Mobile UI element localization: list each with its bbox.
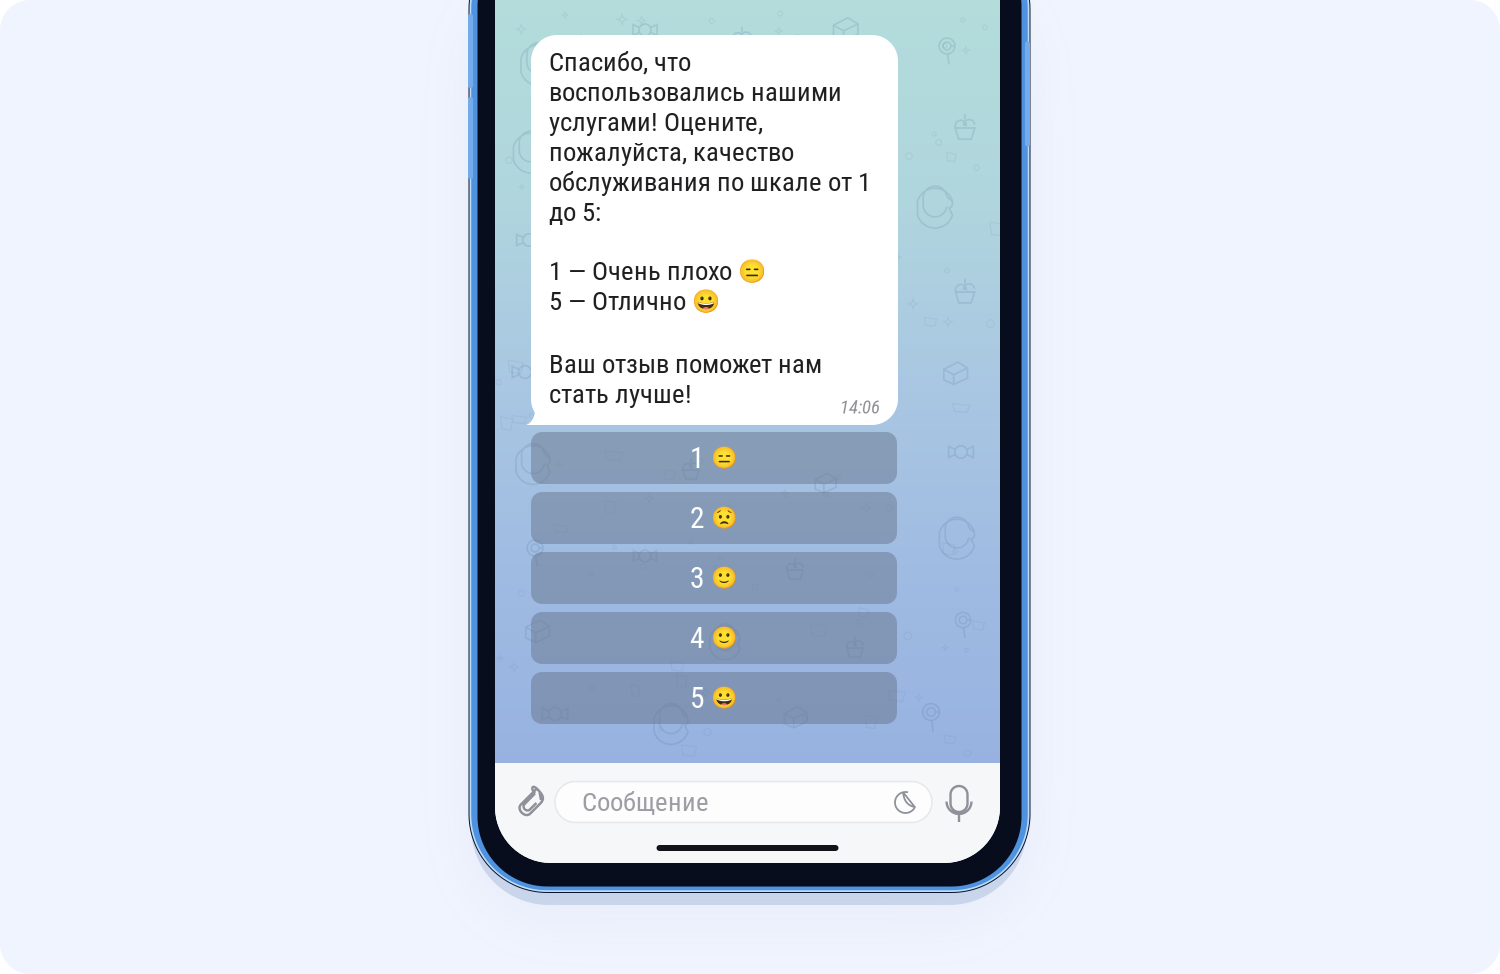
staticText: до 5:: [549, 196, 601, 228]
staticText: 5: [690, 681, 704, 715]
staticText: 🙂: [711, 565, 738, 590]
staticText: 2: [690, 501, 704, 535]
staticText: Спасибо, что: [549, 46, 691, 78]
staticText: 😑: [711, 445, 738, 470]
button[interactable]: Record voice message: [937, 782, 981, 826]
staticText: 😟: [711, 505, 738, 530]
staticText: Ваш отзыв поможет нам: [549, 348, 822, 380]
staticText: 😀: [692, 288, 720, 314]
staticText: услугами! Оцените,: [549, 106, 763, 138]
button[interactable]: 1: [531, 432, 897, 484]
staticText: Сообщение: [582, 786, 709, 818]
button[interactable]: 4: [531, 612, 897, 664]
staticText: 🙂: [711, 625, 738, 650]
button[interactable]: 5: [531, 672, 897, 724]
staticText: 14:06: [840, 396, 880, 418]
staticText: воспользовались нашими: [549, 76, 842, 108]
staticText: 1 — Очень плохо: [549, 255, 732, 287]
staticText: 4: [690, 621, 704, 655]
button[interactable]: Attach file: [507, 779, 551, 825]
staticText: стать лучше!: [549, 378, 692, 410]
staticText: 3: [690, 561, 704, 595]
staticText: 😑: [738, 258, 766, 284]
staticText: обслуживания по шкале от 1: [549, 166, 871, 198]
staticText: 😀: [711, 685, 738, 710]
staticText: пожалуйста, качество: [549, 136, 794, 168]
staticText: 5 — Отлично: [549, 285, 686, 317]
button[interactable]: 3: [531, 552, 897, 604]
staticText: 1: [690, 441, 704, 475]
button[interactable]: 2: [531, 492, 897, 544]
